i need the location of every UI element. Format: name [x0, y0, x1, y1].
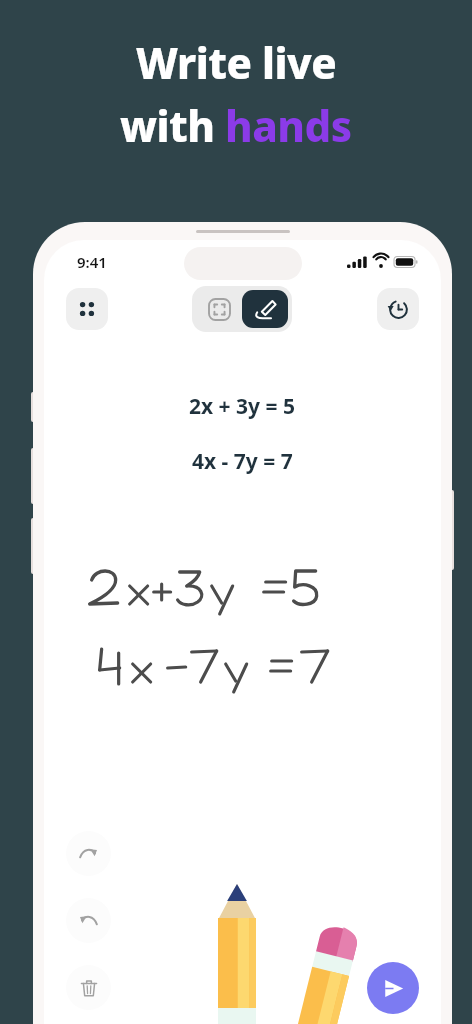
staticText: hands — [225, 97, 352, 154]
button[interactable]: Write — [242, 290, 288, 328]
button[interactable]: Scan — [196, 290, 242, 328]
button[interactable]: Undo — [66, 898, 111, 943]
staticText: Write live — [136, 34, 337, 91]
button[interactable]: Delete — [66, 965, 111, 1010]
button[interactable]: Send — [367, 962, 419, 1014]
button[interactable]: Apps — [66, 288, 108, 330]
staticText: 9:41 — [77, 252, 107, 272]
staticText: with — [120, 97, 225, 154]
button[interactable]: Redo — [66, 831, 111, 876]
button[interactable]: History — [377, 288, 419, 330]
staticText: 2x + 3y = 5 — [189, 392, 296, 421]
staticText: 4x - 7y = 7 — [192, 447, 293, 476]
